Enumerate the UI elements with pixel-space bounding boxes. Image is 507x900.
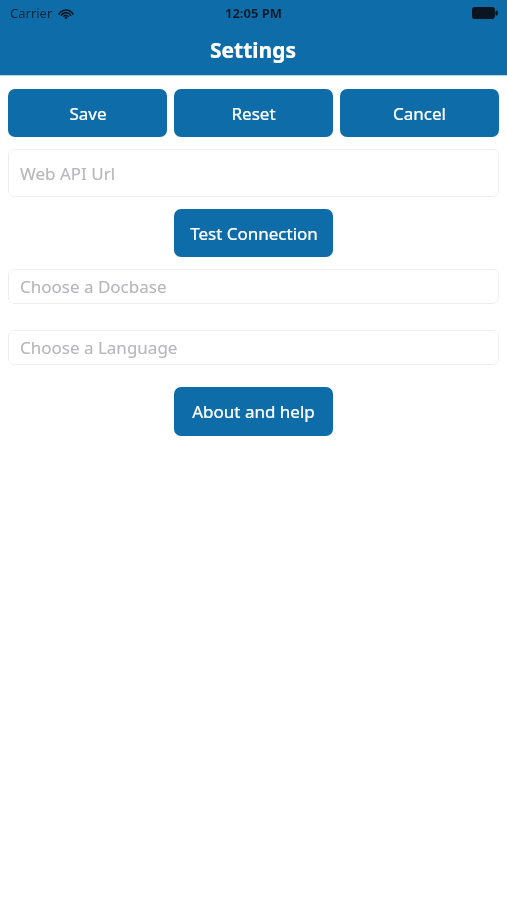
staticText: About and help bbox=[192, 400, 315, 423]
staticText: Choose a Language bbox=[20, 336, 178, 359]
staticText: Settings bbox=[210, 36, 297, 65]
staticText: Test Connection bbox=[190, 222, 318, 245]
staticText: Carrier bbox=[10, 4, 53, 22]
button[interactable]: Test Connection bbox=[174, 209, 333, 257]
button[interactable]: Reset bbox=[174, 89, 333, 137]
button[interactable]: Cancel bbox=[340, 89, 499, 137]
button[interactable]: About and help bbox=[174, 387, 333, 436]
button[interactable]: Choose a Language bbox=[8, 330, 499, 365]
staticText: Cancel bbox=[393, 102, 446, 125]
staticText: Choose a Docbase bbox=[20, 275, 167, 298]
button[interactable]: Choose a Docbase bbox=[8, 269, 499, 304]
button[interactable]: Web API Url bbox=[8, 149, 499, 197]
staticText: Save bbox=[69, 102, 107, 125]
staticText: 12:05 PM bbox=[225, 4, 283, 22]
staticText: Web API Url bbox=[20, 162, 116, 185]
button[interactable]: Save bbox=[8, 89, 167, 137]
staticText: Reset bbox=[231, 102, 276, 125]
